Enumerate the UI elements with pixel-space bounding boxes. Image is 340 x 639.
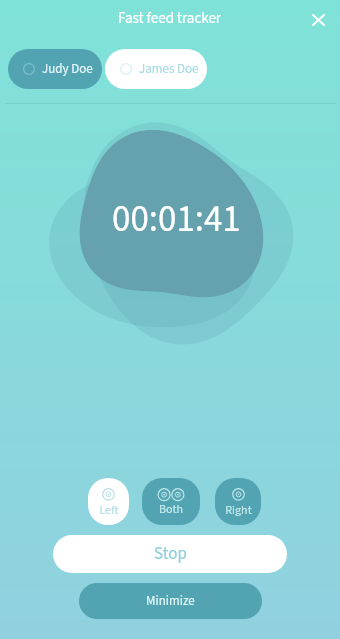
button[interactable]: Judy Doe (8, 49, 102, 89)
staticText: James Doe (139, 61, 199, 78)
staticText: Fast feed tracker (118, 9, 222, 29)
staticText: Stop (154, 543, 187, 565)
button[interactable]: Stop (53, 535, 287, 573)
button[interactable]: Close (305, 7, 331, 33)
button[interactable]: Left (88, 478, 129, 525)
staticText: Judy Doe (42, 61, 93, 78)
staticText: Right (225, 503, 252, 519)
button[interactable]: Right (215, 478, 261, 525)
staticText: 00:01:41 (112, 196, 241, 244)
button[interactable]: Both (142, 478, 200, 525)
button[interactable]: James Doe (105, 49, 207, 89)
button[interactable]: Minimize (79, 583, 262, 619)
staticText: Left (99, 503, 119, 519)
staticText: Both (159, 502, 183, 518)
staticText: Minimize (146, 593, 195, 610)
